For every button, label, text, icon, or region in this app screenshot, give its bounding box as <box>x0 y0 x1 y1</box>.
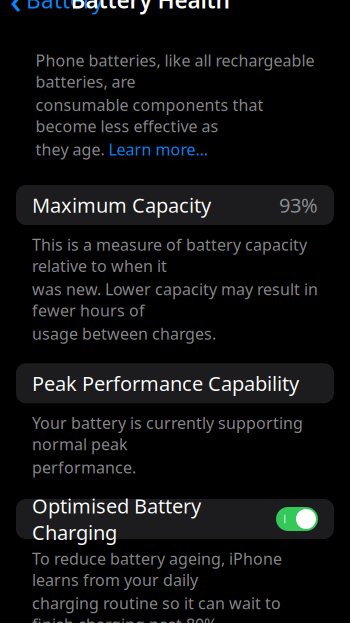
staticText: Battery Health <box>70 0 229 15</box>
button[interactable]: Learn more… <box>108 139 208 160</box>
staticText: Phone batteries, like all rechargeable b… <box>35 50 314 92</box>
staticText: To reduce battery ageing, iPhone learns … <box>32 548 282 590</box>
button[interactable]: Maximum Capacity <box>0 185 350 225</box>
staticText: Peak Performance Capability <box>32 370 299 397</box>
staticText: Optimised Battery Charging <box>32 492 201 545</box>
staticText: Maximum Capacity <box>32 192 211 218</box>
staticText: Battery <box>26 0 104 15</box>
staticText: usage between charges. <box>32 323 216 344</box>
staticText: Your battery is currently supporting nor… <box>32 412 303 455</box>
staticText: 93% <box>279 192 318 218</box>
staticText: ‹ <box>10 0 22 24</box>
staticText: Learn more… <box>108 139 208 160</box>
staticText: charging routine so it can wait to finis… <box>32 592 281 623</box>
staticText: consumable components that become less e… <box>35 94 263 137</box>
staticText: was new. Lower capacity may result in fe… <box>32 278 318 321</box>
staticText: This is a measure of battery capacity re… <box>32 234 307 276</box>
button[interactable]: Optimised Battery Charging <box>0 499 350 539</box>
button[interactable]: ‹ <box>0 0 104 28</box>
button[interactable]: Peak Performance Capability <box>0 363 350 403</box>
staticText: performance. <box>32 457 136 478</box>
staticText: they age. <box>35 139 108 160</box>
